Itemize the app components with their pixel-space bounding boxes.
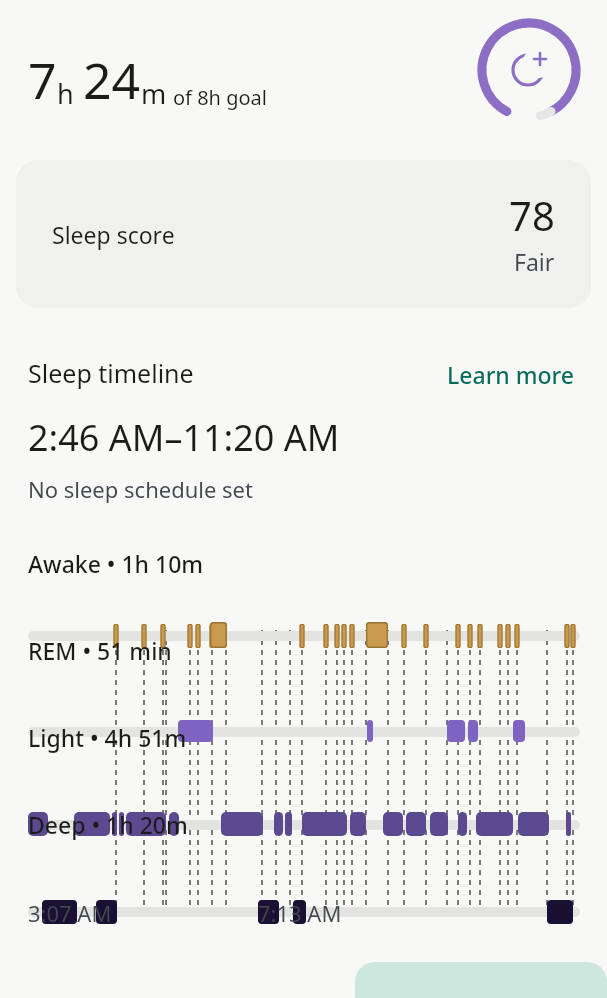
staticText: 2:46 AM–11:20 AM <box>28 413 340 462</box>
staticText: Sleep score <box>52 219 175 250</box>
staticText: 78 <box>509 188 555 242</box>
staticText: Fair <box>514 246 555 277</box>
staticText: Deep • 1h 20m <box>28 809 188 840</box>
staticText: No sleep schedule set <box>28 474 253 504</box>
staticText: 24 <box>83 46 141 114</box>
staticText: Learn more <box>447 359 575 387</box>
staticText: Light • 4h 51m <box>28 722 187 753</box>
staticText: 7 <box>28 46 57 114</box>
staticText: Awake • 1h 10m <box>28 548 204 579</box>
staticText: h <box>57 75 74 112</box>
staticText: 3:07 AM <box>28 898 112 928</box>
staticText: 7:13 AM <box>258 898 342 928</box>
button[interactable]: Learn more <box>443 355 579 391</box>
button[interactable]: Sleep score <box>16 160 591 308</box>
staticText: m <box>141 75 167 112</box>
staticText: REM • 51 min <box>28 635 172 666</box>
button[interactable]: Sleep goal progress <box>475 14 585 124</box>
staticText: Sleep timeline <box>28 356 194 390</box>
staticText: of 8h goal <box>173 84 267 111</box>
